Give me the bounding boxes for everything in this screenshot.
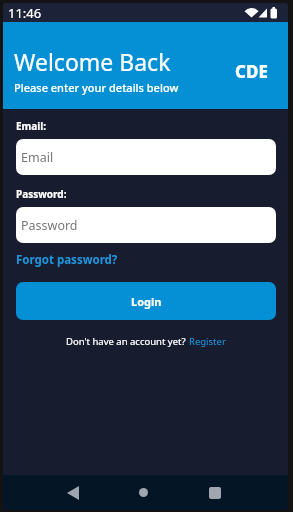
staticText: Email xyxy=(21,149,54,166)
button[interactable]: Login xyxy=(16,282,276,320)
staticText: Login xyxy=(131,294,162,309)
staticText: Welcome Back xyxy=(14,46,171,77)
staticText: Please enter your details below xyxy=(14,80,179,95)
staticText: 11:46 xyxy=(8,4,42,22)
staticText: Don't have an account yet? xyxy=(66,335,189,348)
button[interactable] xyxy=(53,475,93,510)
staticText: Email: xyxy=(16,119,47,133)
button[interactable]: Email xyxy=(16,139,276,175)
button[interactable]: Password xyxy=(16,207,276,243)
staticText: Password: xyxy=(16,187,67,201)
button[interactable]: Register xyxy=(189,335,226,348)
button[interactable] xyxy=(195,475,235,510)
button[interactable] xyxy=(123,475,163,510)
staticText: Password xyxy=(21,217,78,234)
staticText: CDE xyxy=(235,60,268,83)
button[interactable]: Forgot password? xyxy=(16,252,118,268)
